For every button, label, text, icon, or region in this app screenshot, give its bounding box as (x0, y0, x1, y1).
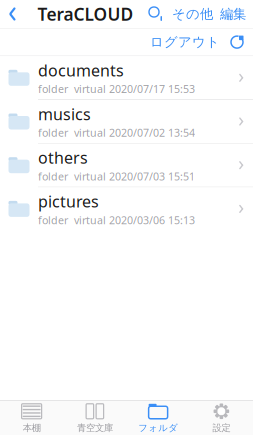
staticText: folder virtual 2020/03/06 15:13 (38, 213, 195, 227)
button[interactable]: documents (0, 56, 253, 100)
staticText: documents (38, 60, 124, 81)
button[interactable]: 青空文庫 (63, 398, 126, 435)
button[interactable]: musics (0, 100, 253, 144)
staticText: 本棚 (23, 422, 41, 434)
staticText: 青空文庫 (77, 422, 113, 434)
button[interactable]: その他 (168, 1, 217, 27)
button[interactable]: ログアウト (144, 29, 226, 55)
button[interactable]: Refresh (226, 30, 253, 54)
staticText: その他 (172, 6, 213, 22)
button[interactable]: Back (0, 1, 27, 27)
staticText: musics (38, 103, 91, 124)
staticText: folder virtual 2020/07/02 13:54 (38, 125, 195, 140)
staticText: pictures (38, 191, 99, 212)
staticText: TeraCLOUD (37, 2, 133, 25)
staticText: ログアウト (150, 34, 220, 50)
button[interactable]: 設定 (190, 398, 253, 435)
staticText: 編集 (220, 6, 246, 22)
staticText: others (38, 147, 88, 168)
button[interactable]: 編集 (217, 1, 253, 27)
staticText: folder virtual 2020/07/17 15:53 (38, 82, 195, 96)
staticText: folder virtual 2020/07/03 15:51 (38, 169, 195, 183)
staticText: フォルダ (138, 422, 178, 434)
button[interactable]: pictures (0, 187, 253, 231)
button[interactable]: others (0, 144, 253, 187)
staticText: 設定 (212, 422, 230, 434)
button[interactable]: フォルダ (126, 398, 190, 435)
button[interactable]: Search (144, 2, 168, 26)
button[interactable]: 本棚 (0, 398, 63, 435)
